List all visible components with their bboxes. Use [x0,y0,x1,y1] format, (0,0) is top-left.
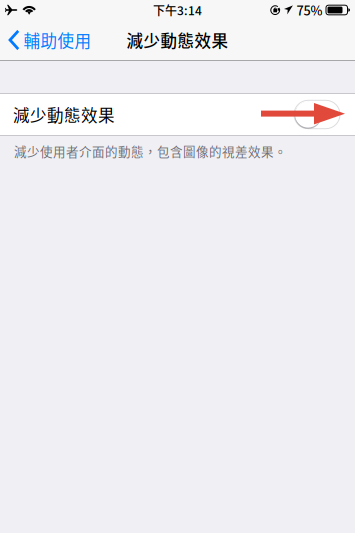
staticText: 下午3:14 [153,1,202,19]
staticText: 減少使用者介面的動態，包含圖像的視差效果。 [14,142,287,160]
staticText: 輔助使用 [23,28,91,52]
staticText: 減少動態效果 [126,28,228,52]
staticText: 減少動態效果 [13,102,115,126]
button[interactable]: 減少動態效果 [0,94,355,135]
button[interactable]: 輔助使用 [0,20,130,60]
staticText: 75% [296,1,322,19]
